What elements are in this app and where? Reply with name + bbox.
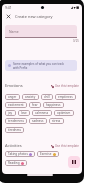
button[interactable]: Use this template xyxy=(51,84,79,88)
staticText: 0/25 xyxy=(73,39,79,43)
staticText: 9:41 xyxy=(5,5,12,10)
button[interactable]: excitement xyxy=(5,102,27,108)
button[interactable]: Exercise xyxy=(37,151,59,157)
button[interactable]: fear xyxy=(29,102,41,108)
staticText: sadness xyxy=(32,119,44,123)
button[interactable]: anxiety xyxy=(22,94,39,100)
button[interactable]: Save xyxy=(68,156,80,168)
staticText: chill xyxy=(44,95,50,99)
button[interactable]: Use this template xyxy=(51,144,79,148)
button[interactable]: optimism xyxy=(54,110,74,116)
button[interactable]: tiredness xyxy=(5,127,24,133)
staticText: tenderness xyxy=(8,119,24,123)
button[interactable]: Close xyxy=(4,12,13,21)
staticText: happiness xyxy=(46,103,61,107)
button[interactable]: anger xyxy=(5,94,20,100)
staticText: Taking photos xyxy=(8,152,28,156)
staticText: Create new category xyxy=(15,14,53,19)
staticText: Use this template xyxy=(55,84,79,88)
button[interactable]: emptiness xyxy=(55,94,76,100)
button[interactable]: Some examples of what you can track with… xyxy=(5,60,77,71)
button[interactable]: happiness xyxy=(43,102,64,108)
staticText: Activities xyxy=(5,143,22,148)
button[interactable]: joy xyxy=(5,110,16,116)
staticText: joy xyxy=(8,111,13,115)
staticText: fear xyxy=(32,103,38,107)
staticText: calmness xyxy=(35,111,49,115)
staticText: emptiness xyxy=(58,95,73,99)
button[interactable]: Name xyxy=(5,25,77,38)
staticText: anxiety xyxy=(25,95,36,99)
staticText: Reading xyxy=(8,161,20,165)
staticText: anger xyxy=(8,95,17,99)
staticText: Some examples of what you can track with… xyxy=(13,62,65,70)
button[interactable]: tenderness xyxy=(5,118,27,124)
button[interactable]: sadness xyxy=(29,118,47,124)
staticText: Exercise xyxy=(40,152,52,156)
staticText: Use this template xyxy=(55,144,79,148)
staticText: tiredness xyxy=(8,128,21,132)
staticText: Emotions xyxy=(5,83,23,88)
button[interactable]: chill xyxy=(41,94,53,100)
staticText: excitement xyxy=(8,103,24,107)
staticText: love xyxy=(21,111,27,115)
button[interactable]: calmness xyxy=(32,110,52,116)
staticText: Name xyxy=(9,29,19,34)
staticText: optimism xyxy=(57,111,71,115)
button[interactable]: stress xyxy=(49,118,64,124)
button[interactable]: Taking photos xyxy=(5,151,35,157)
staticText: stress xyxy=(52,119,61,123)
button[interactable]: Reading xyxy=(5,160,27,166)
button[interactable]: love xyxy=(18,110,30,116)
